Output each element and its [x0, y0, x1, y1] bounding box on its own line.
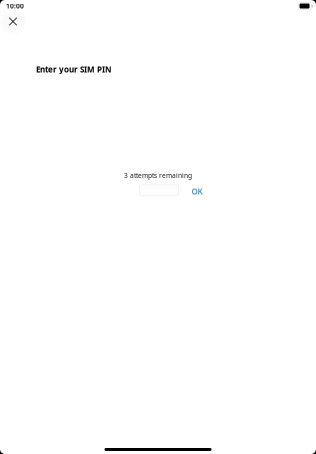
button[interactable]: OK [178, 185, 202, 196]
button[interactable]: Close [0, 9, 26, 35]
staticText: Enter your SIM PIN [36, 64, 112, 75]
staticText: 3 attempts remaining [124, 171, 192, 180]
staticText: OK [191, 186, 202, 197]
staticText: 10:00 [6, 2, 24, 10]
